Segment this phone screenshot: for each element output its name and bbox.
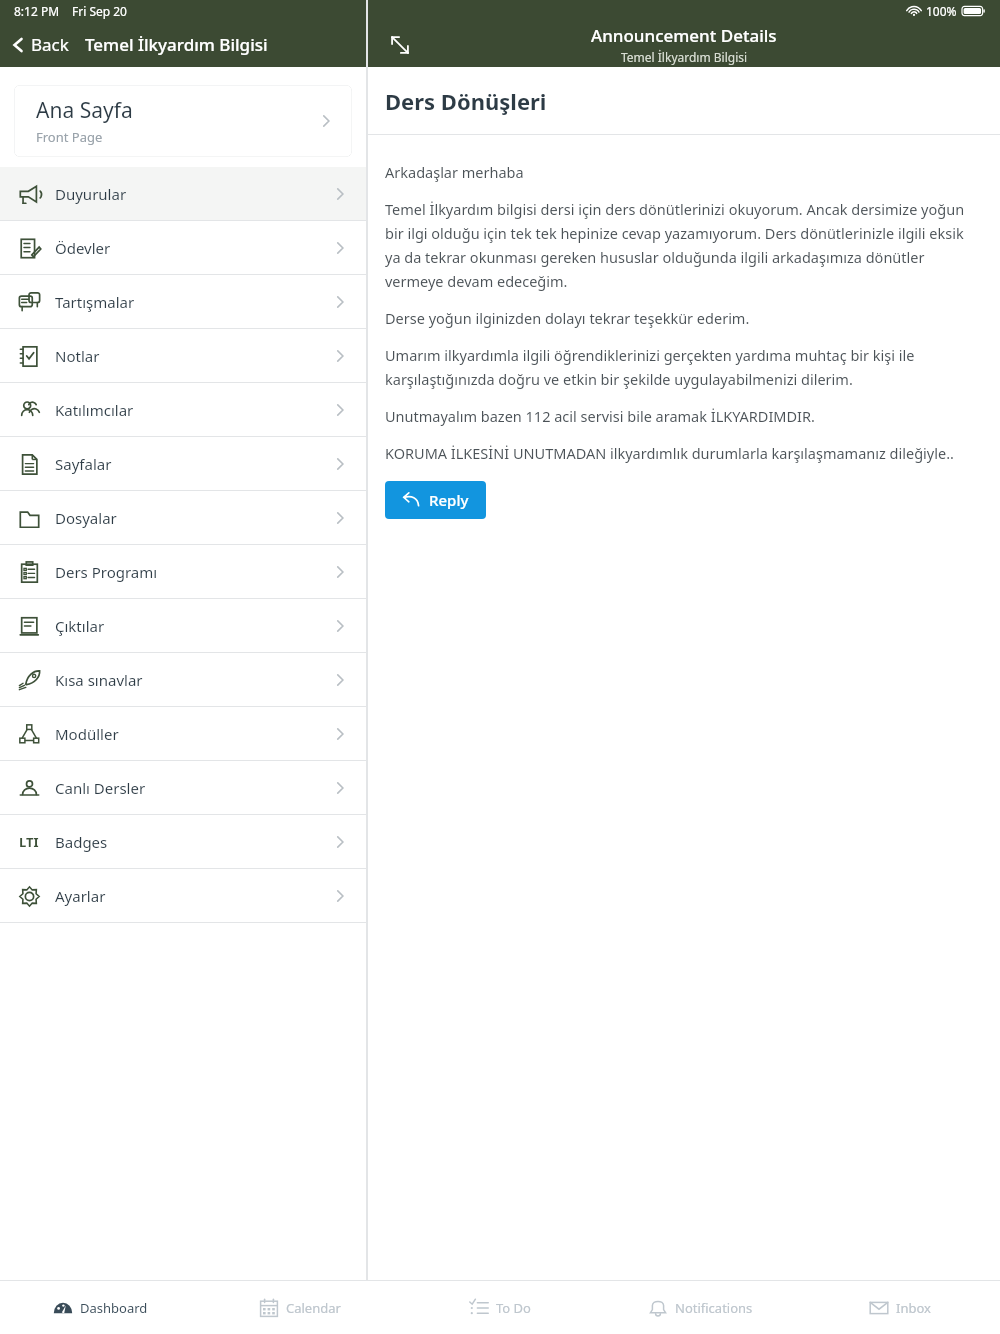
staticText: Ayarlar [55, 886, 106, 906]
staticText: Temel İlkyardım Bilgisi [85, 33, 268, 56]
staticText: 8:12 PM [14, 3, 60, 19]
staticText: Fri Sep 20 [72, 3, 127, 19]
staticText: Calendar [286, 1299, 341, 1317]
staticText: Badges [55, 832, 108, 852]
button[interactable]: Collapse panel [380, 25, 420, 65]
staticText: Dashboard [80, 1299, 148, 1317]
staticText: KORUMA İLKESİNİ UNUTMADAN ilkyardımlık d… [385, 443, 954, 463]
staticText: Unutmayalım bazen 112 acil servisi bile … [385, 406, 815, 426]
staticText: Back [31, 33, 69, 56]
staticText: Notlar [55, 346, 100, 366]
staticText: Katılımcılar [55, 400, 134, 420]
button[interactable]: Ödevler [0, 221, 366, 274]
button[interactable]: Calendar [200, 1281, 400, 1334]
button[interactable]: Inbox [800, 1281, 1000, 1334]
button[interactable]: Duyurular [0, 167, 366, 220]
button[interactable]: Çıktılar [0, 599, 366, 652]
staticText: LTI [19, 833, 39, 851]
staticText: Temel İlkyardım bilgisi dersi için ders … [385, 199, 978, 291]
staticText: Çıktılar [55, 616, 105, 636]
staticText: Notifications [675, 1299, 753, 1317]
button[interactable]: Ana Sayfa [14, 85, 352, 157]
button[interactable]: LTI [0, 815, 366, 868]
staticText: Temel İlkyardım Bilgisi [621, 49, 748, 65]
staticText: Ders Dönüşleri [385, 86, 547, 116]
staticText: Kısa sınavlar [55, 670, 143, 690]
button[interactable]: Notifications [600, 1281, 800, 1334]
button[interactable]: Katılımcılar [0, 383, 366, 436]
staticText: Duyurular [55, 184, 127, 204]
staticText: Derse yoğun ilginizden dolayı tekrar teş… [385, 308, 750, 328]
staticText: To Do [496, 1299, 531, 1317]
button[interactable]: To Do [400, 1281, 600, 1334]
staticText: Modüller [55, 724, 119, 744]
button[interactable]: Dosyalar [0, 491, 366, 544]
staticText: Announcement Details [591, 24, 777, 47]
staticText: Umarım ilkyardımla ilgili öğrendiklerini… [385, 345, 978, 389]
button[interactable]: Tartışmalar [0, 275, 366, 328]
staticText: Canlı Dersler [55, 778, 146, 798]
staticText: Ödevler [55, 238, 111, 258]
button[interactable]: Sayfalar [0, 437, 366, 490]
staticText: Ana Sayfa [36, 96, 133, 125]
staticText: Dosyalar [55, 508, 117, 528]
button[interactable]: Ayarlar [0, 869, 366, 922]
staticText: Arkadaşlar merhaba [385, 162, 524, 182]
button[interactable]: Dashboard [0, 1281, 200, 1334]
staticText: Front Page [36, 128, 103, 146]
staticText: Inbox [896, 1299, 931, 1317]
button[interactable]: Canlı Dersler [0, 761, 366, 814]
staticText: Reply [429, 490, 469, 510]
button[interactable]: Modüller [0, 707, 366, 760]
button[interactable]: Ders Programı [0, 545, 366, 598]
button[interactable]: Kısa sınavlar [0, 653, 366, 706]
staticText: Tartışmalar [55, 292, 135, 312]
button[interactable]: Reply [385, 481, 486, 519]
button[interactable]: Back [0, 27, 77, 62]
staticText: Sayfalar [55, 454, 112, 474]
staticText: Ders Programı [55, 562, 158, 582]
button[interactable]: Notlar [0, 329, 366, 382]
staticText: 100% [926, 3, 957, 19]
